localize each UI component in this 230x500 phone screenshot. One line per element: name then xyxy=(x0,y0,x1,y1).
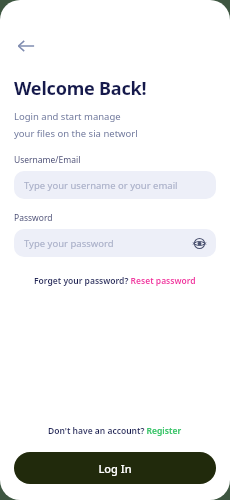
staticText: Forget your password? Reset password xyxy=(34,275,196,287)
button[interactable]: Back xyxy=(8,28,44,64)
staticText: Log In xyxy=(98,461,132,476)
staticText: Password xyxy=(14,212,53,224)
button[interactable]: Type your username or your email xyxy=(14,171,216,199)
staticText: Type your password xyxy=(24,237,114,250)
staticText: Username/Email xyxy=(14,154,81,166)
staticText: Type your username or your email xyxy=(24,179,178,192)
staticText: Don't have an account? Register xyxy=(48,425,182,437)
button[interactable]: Show password xyxy=(188,232,210,254)
button[interactable]: Type your password xyxy=(14,229,216,257)
staticText: your files on the sia networl xyxy=(14,127,138,140)
button[interactable]: Log In xyxy=(14,452,216,484)
button[interactable]: Don't have an account? Register xyxy=(44,423,186,439)
staticText: Login and start manage xyxy=(14,110,121,123)
staticText: Welcome Back! xyxy=(14,76,147,101)
button[interactable]: Forget your password? Reset password xyxy=(30,273,200,289)
